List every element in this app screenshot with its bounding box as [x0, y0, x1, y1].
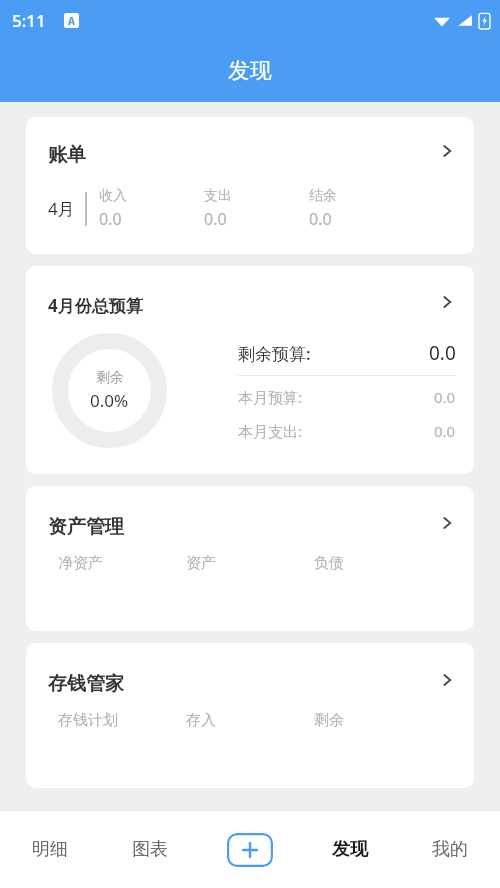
staticText: 收入 — [99, 187, 127, 205]
staticText: 存入 — [186, 711, 216, 730]
staticText: 0.0 — [429, 340, 456, 366]
staticText: 净资产 — [58, 554, 103, 573]
staticText: A — [68, 14, 75, 28]
staticText: 明细 — [32, 838, 68, 861]
other: 存钱管家 — [438, 671, 456, 689]
staticText: 资产 — [186, 554, 216, 573]
button[interactable]: 明细 — [0, 811, 100, 888]
staticText: 支出 — [204, 187, 232, 205]
staticText: 结余 — [309, 187, 337, 205]
button[interactable]: 图表 — [100, 811, 200, 888]
button[interactable]: 添加 — [227, 833, 273, 867]
other: 账单详情 — [438, 142, 456, 160]
staticText: 剩余 — [314, 711, 344, 730]
staticText: 本月支出: — [238, 421, 303, 441]
staticText: 0.0 — [309, 208, 332, 230]
staticText: 0.0 — [434, 421, 456, 441]
button[interactable]: 发现 — [300, 811, 400, 888]
staticText: 0.0% — [90, 389, 129, 412]
staticText: 资产管理 — [48, 515, 124, 539]
staticText: 5:11 — [12, 9, 46, 32]
staticText: 我的 — [432, 838, 468, 861]
staticText: 剩余预算: — [238, 342, 311, 365]
staticText: 0.0 — [204, 208, 227, 230]
staticText: 0.0 — [99, 208, 122, 230]
staticText: 剩余 — [96, 369, 124, 387]
button[interactable]: 4月份总预算 — [26, 266, 474, 474]
other: 资产管理 — [438, 514, 456, 532]
staticText: 发现 — [332, 838, 368, 861]
button[interactable]: 账单 — [26, 117, 474, 254]
staticText: 账单 — [48, 143, 86, 167]
staticText: 存钱计划 — [58, 711, 118, 730]
staticText: 0.0 — [434, 387, 456, 407]
staticText: 图表 — [132, 838, 168, 861]
other: 预算详情 — [438, 293, 456, 311]
staticText: 本月预算: — [238, 387, 303, 407]
button[interactable]: 存钱管家 — [26, 643, 474, 788]
staticText: 存钱管家 — [48, 672, 124, 696]
staticText: 4月 — [48, 197, 75, 220]
staticText: 4月份总预算 — [48, 294, 143, 317]
button[interactable]: 我的 — [400, 811, 500, 888]
staticText: 负债 — [314, 554, 344, 573]
button[interactable]: 资产管理 — [26, 486, 474, 631]
staticText: 发现 — [228, 57, 272, 85]
